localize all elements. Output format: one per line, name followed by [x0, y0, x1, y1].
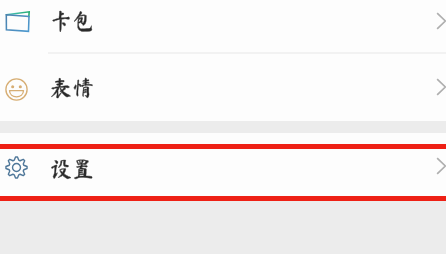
- staticText: 设置: [50, 158, 95, 180]
- button[interactable]: 设置: [0, 149, 446, 196]
- button[interactable]: 表情: [0, 52, 446, 121]
- staticText: 表情: [50, 77, 95, 99]
- staticText: 表情: [50, 77, 95, 99]
- staticText: 设置: [50, 158, 95, 180]
- button[interactable]: 卡包: [0, 0, 446, 52]
- staticText: 卡包: [50, 10, 95, 32]
- staticText: 卡包: [50, 10, 95, 32]
